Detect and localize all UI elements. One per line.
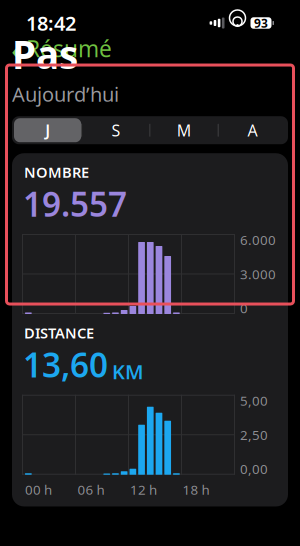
staticText: 06 h: [77, 320, 104, 338]
button[interactable]: M: [150, 118, 218, 142]
button[interactable]: ‹: [11, 23, 112, 73]
staticText: 19.557: [23, 182, 127, 226]
staticText: 12 h: [130, 481, 157, 498]
staticText: 06 h: [77, 481, 104, 498]
staticText: ‹: [11, 25, 22, 71]
staticText: 5,00: [240, 392, 268, 409]
staticText: KM: [112, 358, 144, 385]
staticText: A: [247, 120, 257, 141]
staticText: DISTANCE: [24, 323, 94, 342]
staticText: 18 h: [182, 481, 209, 498]
staticText: S: [111, 120, 120, 141]
staticText: 00 h: [25, 481, 52, 498]
staticText: 0: [240, 299, 248, 317]
staticText: 0,00: [240, 460, 268, 478]
staticText: 93: [254, 15, 268, 31]
staticText: Pas: [12, 28, 78, 80]
button[interactable]: S: [82, 118, 149, 142]
staticText: 18:42: [26, 10, 76, 36]
staticText: M: [177, 120, 192, 141]
button[interactable]: J: [14, 118, 81, 142]
staticText: Aujourd’hui: [12, 81, 119, 107]
staticText: 00 h: [25, 320, 52, 338]
staticText: NOMBRE: [24, 162, 89, 182]
staticText: Résumé: [26, 33, 112, 63]
button[interactable]: A: [219, 118, 286, 142]
staticText: 13,60: [23, 342, 108, 387]
staticText: 6.000: [240, 231, 276, 249]
staticText: 3.000: [240, 265, 276, 283]
staticText: J: [45, 120, 50, 141]
staticText: 2,50: [240, 426, 268, 444]
